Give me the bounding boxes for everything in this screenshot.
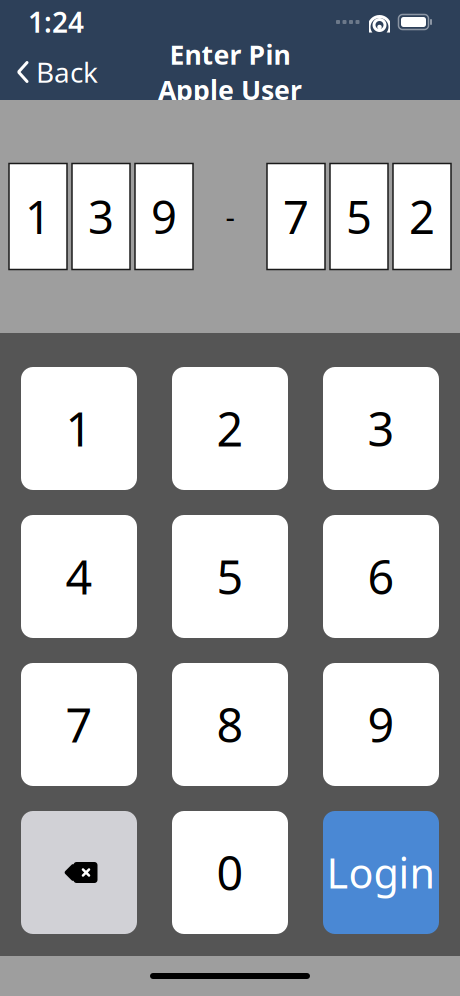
staticText: 4 bbox=[65, 545, 92, 607]
staticText: 8 bbox=[216, 693, 243, 755]
button[interactable]: 9 bbox=[323, 663, 439, 786]
staticText: 9 bbox=[151, 186, 177, 247]
button[interactable]: 6 bbox=[323, 515, 439, 638]
staticText: 0 bbox=[216, 841, 243, 903]
button[interactable]: 1 bbox=[21, 367, 137, 490]
staticText: 7 bbox=[65, 693, 92, 755]
staticText: Enter Pin bbox=[169, 37, 290, 72]
staticText: 1 bbox=[65, 397, 92, 459]
staticText: 9 bbox=[367, 693, 394, 755]
staticText: 1:24 bbox=[28, 3, 84, 41]
staticText: 5 bbox=[216, 545, 243, 607]
button[interactable]: Back bbox=[4, 45, 110, 99]
staticText: - bbox=[225, 197, 234, 236]
button[interactable]: 7 bbox=[21, 663, 137, 786]
button[interactable]: 3 bbox=[323, 367, 439, 490]
staticText: 7 bbox=[283, 186, 309, 247]
button[interactable]: 5 bbox=[172, 515, 288, 638]
staticText: Back bbox=[36, 53, 98, 91]
button[interactable]: 2 bbox=[172, 367, 288, 490]
button[interactable]: Login bbox=[323, 811, 439, 934]
button[interactable]: 4 bbox=[21, 515, 137, 638]
staticText: Login bbox=[326, 845, 435, 900]
staticText: 3 bbox=[88, 186, 114, 247]
staticText: 5 bbox=[346, 186, 372, 247]
staticText: 6 bbox=[367, 545, 394, 607]
staticText: 1 bbox=[25, 186, 51, 247]
staticText: Apple User bbox=[158, 72, 302, 107]
button[interactable]: 8 bbox=[172, 663, 288, 786]
staticText: 2 bbox=[409, 186, 435, 247]
staticText: 3 bbox=[367, 397, 394, 459]
button[interactable]: Delete bbox=[21, 811, 137, 934]
button[interactable]: 0 bbox=[172, 811, 288, 934]
staticText: 2 bbox=[216, 397, 243, 459]
